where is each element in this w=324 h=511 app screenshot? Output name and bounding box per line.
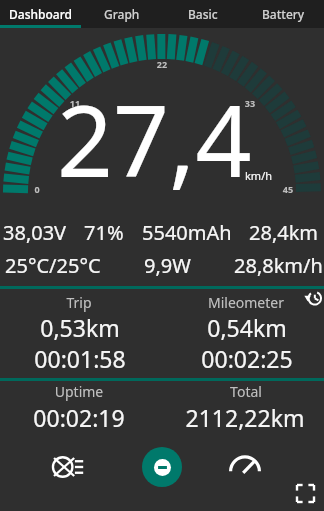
staticText: 0,53km (0, 312, 160, 343)
button[interactable]: Dashboard (0, 0, 81, 28)
staticText: 2112,22km (165, 402, 324, 433)
staticText: 00:02:19 (0, 402, 159, 433)
staticText: 71% (84, 219, 124, 246)
staticText: 0 (0, 183, 117, 195)
staticText: 25°C/25°C (5, 252, 101, 279)
staticText: Basic (188, 6, 218, 22)
button[interactable]: Power (142, 447, 182, 487)
staticText: Total (166, 382, 324, 401)
staticText: 38,03V (3, 219, 67, 246)
staticText: 11 (0, 97, 155, 109)
staticText: 9,9W (144, 252, 191, 279)
button[interactable]: Reset trip history (304, 289, 323, 308)
staticText: Graph (104, 6, 140, 22)
button[interactable]: Battery (243, 0, 324, 28)
staticText: Trip (0, 293, 159, 312)
staticText: 28,8km/h (234, 252, 323, 279)
staticText: Mileometer (166, 293, 324, 312)
staticText: 5540mAh (142, 219, 232, 246)
staticText: 00:02:25 (167, 343, 324, 374)
staticText: Dashboard (9, 6, 72, 22)
staticText: 00:01:58 (0, 343, 160, 374)
staticText: 0,54km (167, 312, 324, 343)
button[interactable]: Graph (81, 0, 162, 28)
staticText: 27,4 (57, 72, 252, 205)
staticText: 33 (170, 97, 324, 109)
button[interactable]: Fullscreen (297, 485, 314, 502)
staticText: Uptime (0, 382, 159, 401)
button[interactable]: Headlight off (47, 447, 87, 487)
button[interactable]: Speedometer (225, 447, 265, 487)
staticText: km/h (245, 168, 273, 183)
staticText: 28,4km (249, 219, 319, 246)
staticText: 22 (82, 58, 242, 70)
staticText: Battery (262, 6, 305, 22)
staticText: 45 (208, 183, 324, 195)
button[interactable]: Basic (162, 0, 243, 28)
